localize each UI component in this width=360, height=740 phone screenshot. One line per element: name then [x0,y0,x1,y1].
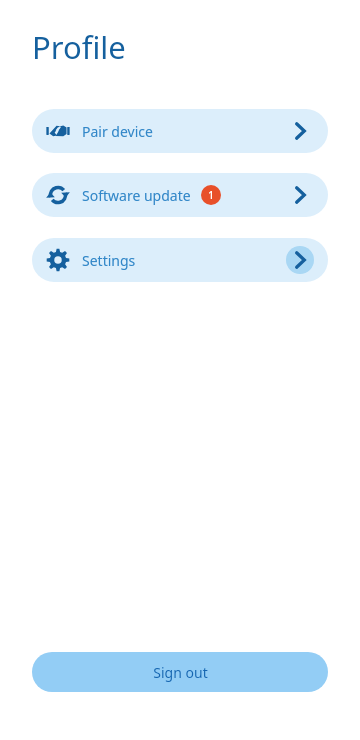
staticText: Profile [32,26,126,68]
button[interactable]: Settings [32,238,328,282]
staticText: Sign out [153,663,208,682]
button[interactable]: Pair device [32,109,328,153]
button[interactable]: Software update [32,173,328,217]
staticText: Pair device [82,122,153,141]
button[interactable]: Open Pair device [278,109,322,153]
button[interactable]: Open Software update [278,173,322,217]
button[interactable]: Open Settings [278,238,322,282]
staticText: Settings [82,251,136,270]
staticText: Software update [82,186,191,205]
staticText: 1 [208,188,214,202]
button[interactable]: Sign out [32,652,328,692]
